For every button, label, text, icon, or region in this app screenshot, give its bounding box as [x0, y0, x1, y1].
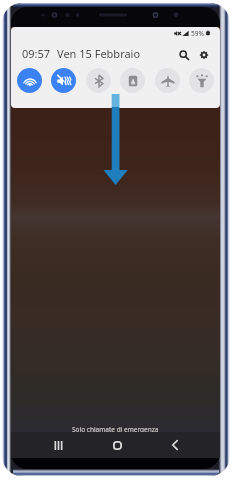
- button[interactable]: Wi-Fi: [17, 68, 42, 93]
- staticText: 09:57: [22, 46, 51, 61]
- button[interactable]: Recents: [47, 434, 69, 456]
- button[interactable]: Airplane mode: [155, 68, 180, 93]
- staticText: Solo chiamate di emergenza: [72, 425, 159, 434]
- button[interactable]: Mute: [51, 68, 76, 93]
- button[interactable]: Settings: [197, 48, 211, 62]
- button[interactable]: Home: [106, 434, 128, 456]
- staticText: 59%: [191, 29, 204, 38]
- staticText: Ven 15 Febbraio: [57, 46, 141, 61]
- button[interactable]: Device: [120, 68, 145, 93]
- button[interactable]: Torch: [189, 68, 214, 93]
- button[interactable]: Search: [177, 48, 191, 62]
- button[interactable]: Back: [164, 434, 186, 456]
- button[interactable]: Bluetooth: [86, 68, 111, 93]
